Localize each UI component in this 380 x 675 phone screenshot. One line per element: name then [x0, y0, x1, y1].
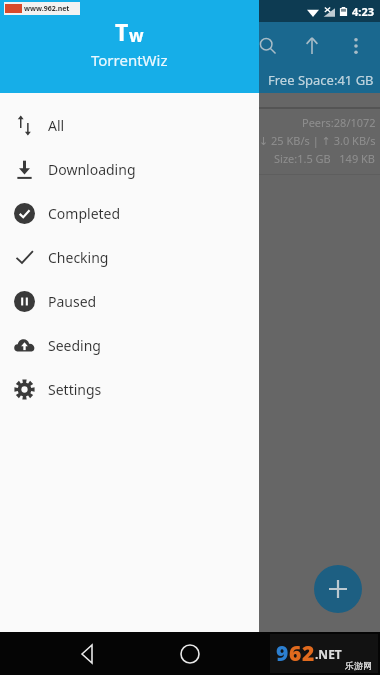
button[interactable]: Search	[252, 30, 284, 62]
button[interactable]: Back	[68, 634, 108, 674]
staticText: ↓ 25 KB/s | ↑ 3.0 KB/s	[259, 133, 376, 148]
staticText: Completed	[48, 204, 121, 223]
staticText: Size:1.5 GB 149 KB	[274, 151, 376, 166]
button[interactable]: Seeding	[0, 323, 259, 367]
staticText: Free Space:41 GB	[268, 71, 374, 89]
staticText: Paused	[48, 292, 97, 311]
staticText: 2	[302, 639, 315, 668]
staticText: Checking	[48, 248, 109, 267]
staticText: All	[48, 116, 65, 135]
staticText: Peers:28/1072	[302, 115, 376, 130]
staticText: Settings	[48, 380, 102, 399]
staticText: Seeding	[48, 336, 101, 355]
button[interactable]: Add torrent	[314, 565, 362, 613]
button[interactable]: Home	[170, 634, 210, 674]
button[interactable]: Checking	[0, 235, 259, 279]
staticText: www.962.net	[24, 4, 70, 14]
staticText: TorrentWiz	[91, 50, 168, 70]
button[interactable]: Paused	[0, 279, 259, 323]
button[interactable]: Settings	[0, 367, 259, 411]
button[interactable]: More options	[340, 30, 372, 62]
staticText: w	[129, 24, 144, 47]
staticText: 6	[289, 639, 302, 668]
button[interactable]: Sort ascending	[296, 30, 328, 62]
staticText: 乐游网	[345, 660, 372, 671]
button[interactable]: Completed	[0, 191, 259, 235]
button[interactable]: Downloading	[0, 147, 259, 191]
staticText: 4:23	[352, 4, 374, 19]
staticText: T	[115, 16, 129, 47]
button[interactable]: All	[0, 103, 259, 147]
staticText: 9	[276, 639, 289, 668]
staticText: Downloading	[48, 160, 136, 179]
staticText: .NET	[315, 646, 342, 662]
button[interactable]: T	[0, 0, 259, 93]
